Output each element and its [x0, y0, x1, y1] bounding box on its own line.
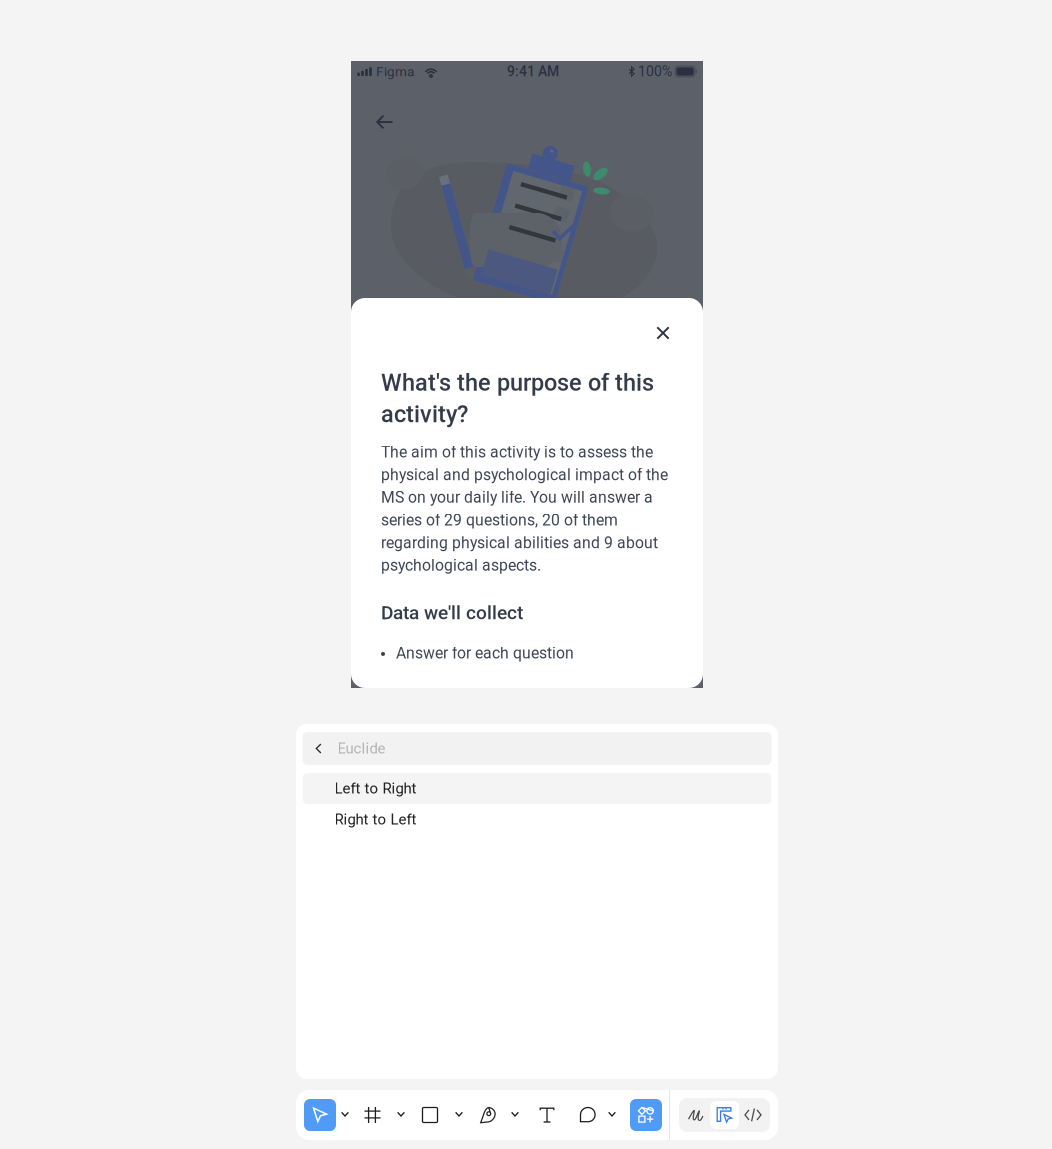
button[interactable]: Right to Left [302, 804, 771, 835]
button[interactable]: Shape tool [418, 1103, 442, 1127]
button[interactable]: Frame tool [360, 1102, 385, 1127]
staticText: Figma [376, 63, 414, 79]
button[interactable]: Move tool [304, 1099, 336, 1131]
button[interactable]: Dev mode [710, 1101, 739, 1129]
button[interactable]: More tools [602, 1095, 622, 1135]
staticText: Data we'll collect [381, 602, 523, 624]
button[interactable]: More tools [449, 1095, 469, 1135]
button[interactable]: More tools [391, 1095, 411, 1135]
staticText: What's the purpose of this activity? [381, 369, 654, 428]
button[interactable]: Pen tool [475, 1102, 500, 1127]
button[interactable]: Close [648, 318, 678, 348]
button[interactable]: Left to Right [302, 773, 771, 804]
button[interactable]: Draw mode [683, 1102, 709, 1128]
staticText: Right to Left [334, 811, 416, 828]
button[interactable]: Euclide [302, 732, 771, 765]
staticText: Answer for each question [396, 644, 574, 662]
staticText: Euclide [337, 740, 385, 757]
button[interactable]: More tools [335, 1095, 355, 1135]
staticText: 100% [638, 63, 672, 80]
button[interactable]: Comment tool [575, 1102, 600, 1127]
button[interactable]: Actions [630, 1099, 662, 1131]
staticText: The aim of this activity is to assess th… [381, 443, 668, 575]
button[interactable]: More tools [505, 1095, 525, 1135]
button[interactable]: Back [376, 107, 410, 137]
button[interactable]: Text tool [535, 1103, 559, 1127]
staticText: 9:41 AM [507, 63, 559, 80]
button[interactable]: Code view [740, 1102, 766, 1128]
staticText: Left to Right [334, 780, 416, 797]
